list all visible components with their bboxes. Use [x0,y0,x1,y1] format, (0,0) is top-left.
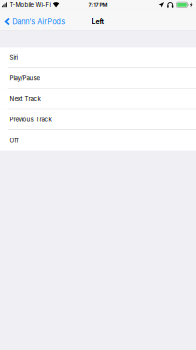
staticText: Previous Track [9,116,51,123]
staticText: Dann's AirPods [12,17,65,26]
staticText: Left [91,17,104,26]
staticText: Next Track [9,95,40,102]
button[interactable]: Siri [0,47,196,68]
button[interactable]: Off [0,130,196,151]
staticText: T-Mobile Wi-Fi [9,1,50,8]
staticText: Siri [9,54,17,61]
staticText: Play/Pause [9,74,40,82]
staticText: 7:17 PM [88,2,107,8]
button[interactable]: Next Track [0,89,196,109]
button[interactable]: Dann's AirPods [0,13,69,30]
staticText: Off [9,137,18,144]
button[interactable]: Previous Track [0,109,196,130]
button[interactable]: Play/Pause [0,68,196,89]
